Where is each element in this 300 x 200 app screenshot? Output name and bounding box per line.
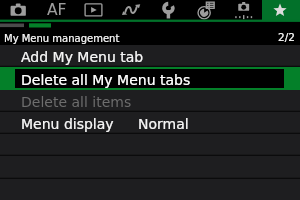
staticText: AF [47,1,67,19]
button[interactable]: Menu display [0,112,300,134]
button[interactable]: Delete all items [0,90,300,112]
staticText: 2/2 [278,31,295,43]
button[interactable]: Delete all My Menu tabs [0,67,300,90]
button[interactable]: Setup [159,0,177,20]
staticText: Add My Menu tab [21,49,144,65]
staticText: Normal [138,116,189,132]
button[interactable]: Add My Menu tab [0,45,300,67]
button[interactable] [0,134,300,156]
button[interactable] [0,156,300,179]
button[interactable]: Custom functions [196,0,214,20]
staticText: Delete all items [21,94,132,110]
button[interactable]: AF [46,0,68,20]
button[interactable]: My Menu [262,0,300,20]
button[interactable]: Shooting settings [10,0,28,20]
button[interactable]: Playback [84,0,102,20]
button[interactable]: Wireless settings [121,0,139,20]
staticText: My Menu management [4,33,120,45]
staticText: Delete all My Menu tabs [21,72,191,88]
staticText: Menu display [21,116,114,132]
button[interactable]: Display settings [234,0,252,20]
